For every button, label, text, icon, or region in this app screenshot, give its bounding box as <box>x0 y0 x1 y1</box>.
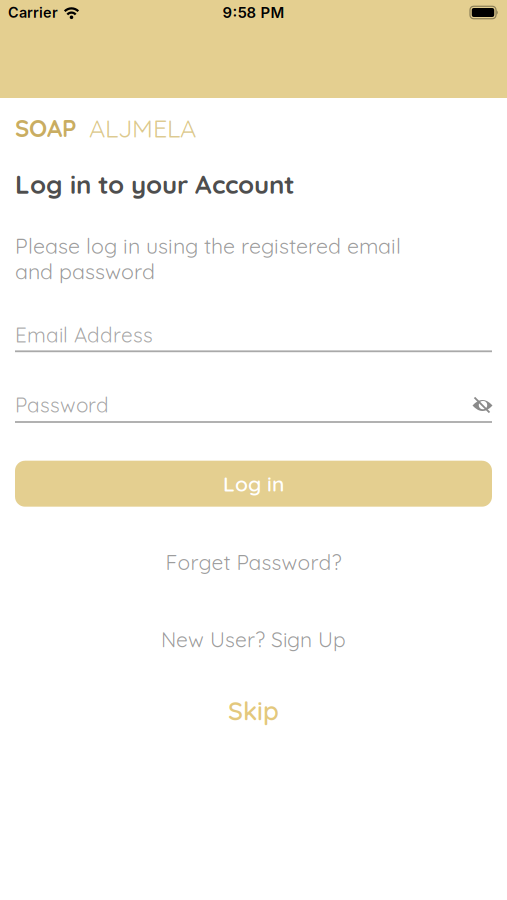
staticText: Log in to your Account <box>15 168 295 200</box>
staticText: Email Address <box>15 322 153 348</box>
staticText: Password <box>15 392 109 418</box>
button[interactable]: Forget Password? <box>157 545 349 579</box>
staticText: Forget Password? <box>165 549 341 575</box>
button[interactable]: Skip <box>220 691 287 731</box>
staticText: Please log in using the registered email <box>15 232 401 259</box>
staticText: 9:58 PM <box>222 3 284 22</box>
staticText: ALJMELA <box>89 112 196 144</box>
staticText: Carrier <box>8 4 58 21</box>
button[interactable]: Log in <box>15 461 492 507</box>
staticText: Skip <box>228 695 279 727</box>
staticText: Log in <box>223 470 284 497</box>
staticText: and password <box>15 258 155 285</box>
button[interactable]: Show password <box>469 394 496 416</box>
staticText: New User? Sign Up <box>161 626 346 652</box>
staticText: SOAP <box>15 113 76 143</box>
button[interactable]: New User? Sign Up <box>153 622 354 656</box>
